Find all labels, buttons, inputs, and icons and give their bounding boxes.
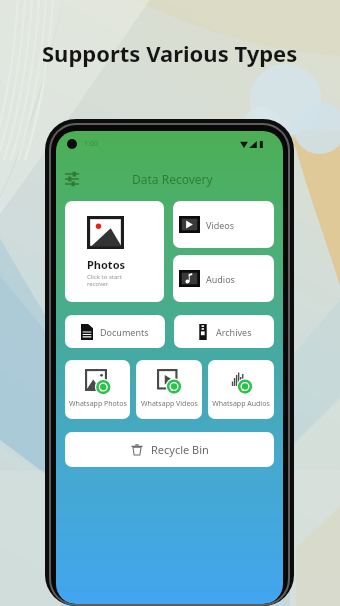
staticText: Archives (216, 326, 252, 338)
button[interactable]: Audios (173, 255, 274, 302)
button[interactable]: Whatsapp Audios (208, 360, 274, 419)
button[interactable]: Recycle Bin (65, 432, 274, 467)
staticText: Click to start recover (87, 273, 122, 288)
staticText: Audios (206, 273, 235, 285)
staticText: Whatsapp Photos (69, 399, 127, 409)
staticText: Videos (206, 219, 235, 231)
staticText: Whatsapp Audios (212, 399, 270, 409)
button[interactable]: Photos (65, 201, 164, 302)
button[interactable]: Archives (174, 315, 274, 348)
staticText: Photos (87, 257, 126, 272)
staticText: Recycle Bin (151, 442, 209, 457)
staticText: Supports Various Types (42, 38, 298, 68)
button[interactable]: Videos (173, 201, 274, 248)
staticText: Documents (100, 326, 149, 338)
button[interactable]: Whatsapp Videos (136, 360, 202, 419)
staticText: Whatsapp Videos (141, 399, 198, 409)
staticText: Data Recovery (132, 171, 213, 187)
staticText: 1:00 (84, 139, 98, 149)
button[interactable]: Documents (65, 315, 165, 348)
button[interactable]: Filter (61, 168, 83, 190)
button[interactable]: Whatsapp Photos (65, 360, 130, 419)
